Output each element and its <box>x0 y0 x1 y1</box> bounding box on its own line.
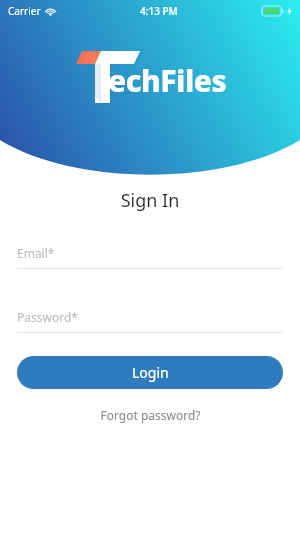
staticText: Login <box>132 363 169 382</box>
staticText: Email* <box>17 245 55 261</box>
staticText: Password* <box>17 309 78 325</box>
button[interactable]: Password* <box>17 309 283 333</box>
staticText: Sign In <box>0 188 300 213</box>
staticText: Forgot password? <box>100 407 201 423</box>
button[interactable]: Email* <box>17 245 283 269</box>
button[interactable]: Login <box>17 356 283 389</box>
staticText: 4:13 PM <box>140 4 178 18</box>
button[interactable]: Forgot password? <box>0 403 300 427</box>
staticText: Carrier <box>8 4 41 18</box>
staticText: echFiles <box>108 60 227 101</box>
